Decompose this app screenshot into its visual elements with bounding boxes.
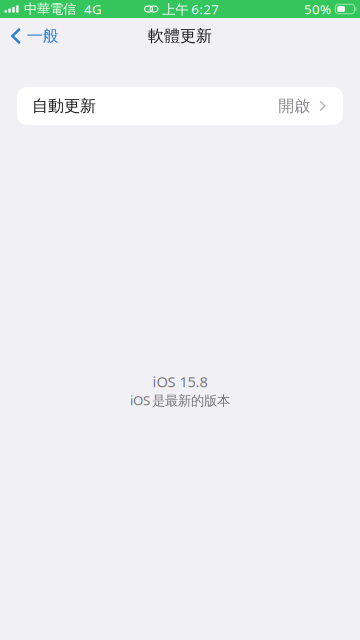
staticText: 50% [304, 0, 331, 18]
staticText: iOS 是最新的版本 [130, 391, 230, 409]
staticText: 4G [84, 0, 102, 18]
staticText: 自動更新 [32, 96, 96, 116]
staticText: 上午 6:27 [162, 0, 219, 18]
staticText: 軟體更新 [148, 26, 212, 46]
staticText: iOS 15.8 [152, 372, 207, 391]
staticText: 開啟 [278, 96, 310, 116]
staticText: 一般 [27, 26, 59, 46]
button[interactable]: 自動更新 [17, 87, 343, 125]
staticText: 中華電信 [24, 1, 76, 17]
button[interactable]: 一般 [0, 20, 59, 52]
